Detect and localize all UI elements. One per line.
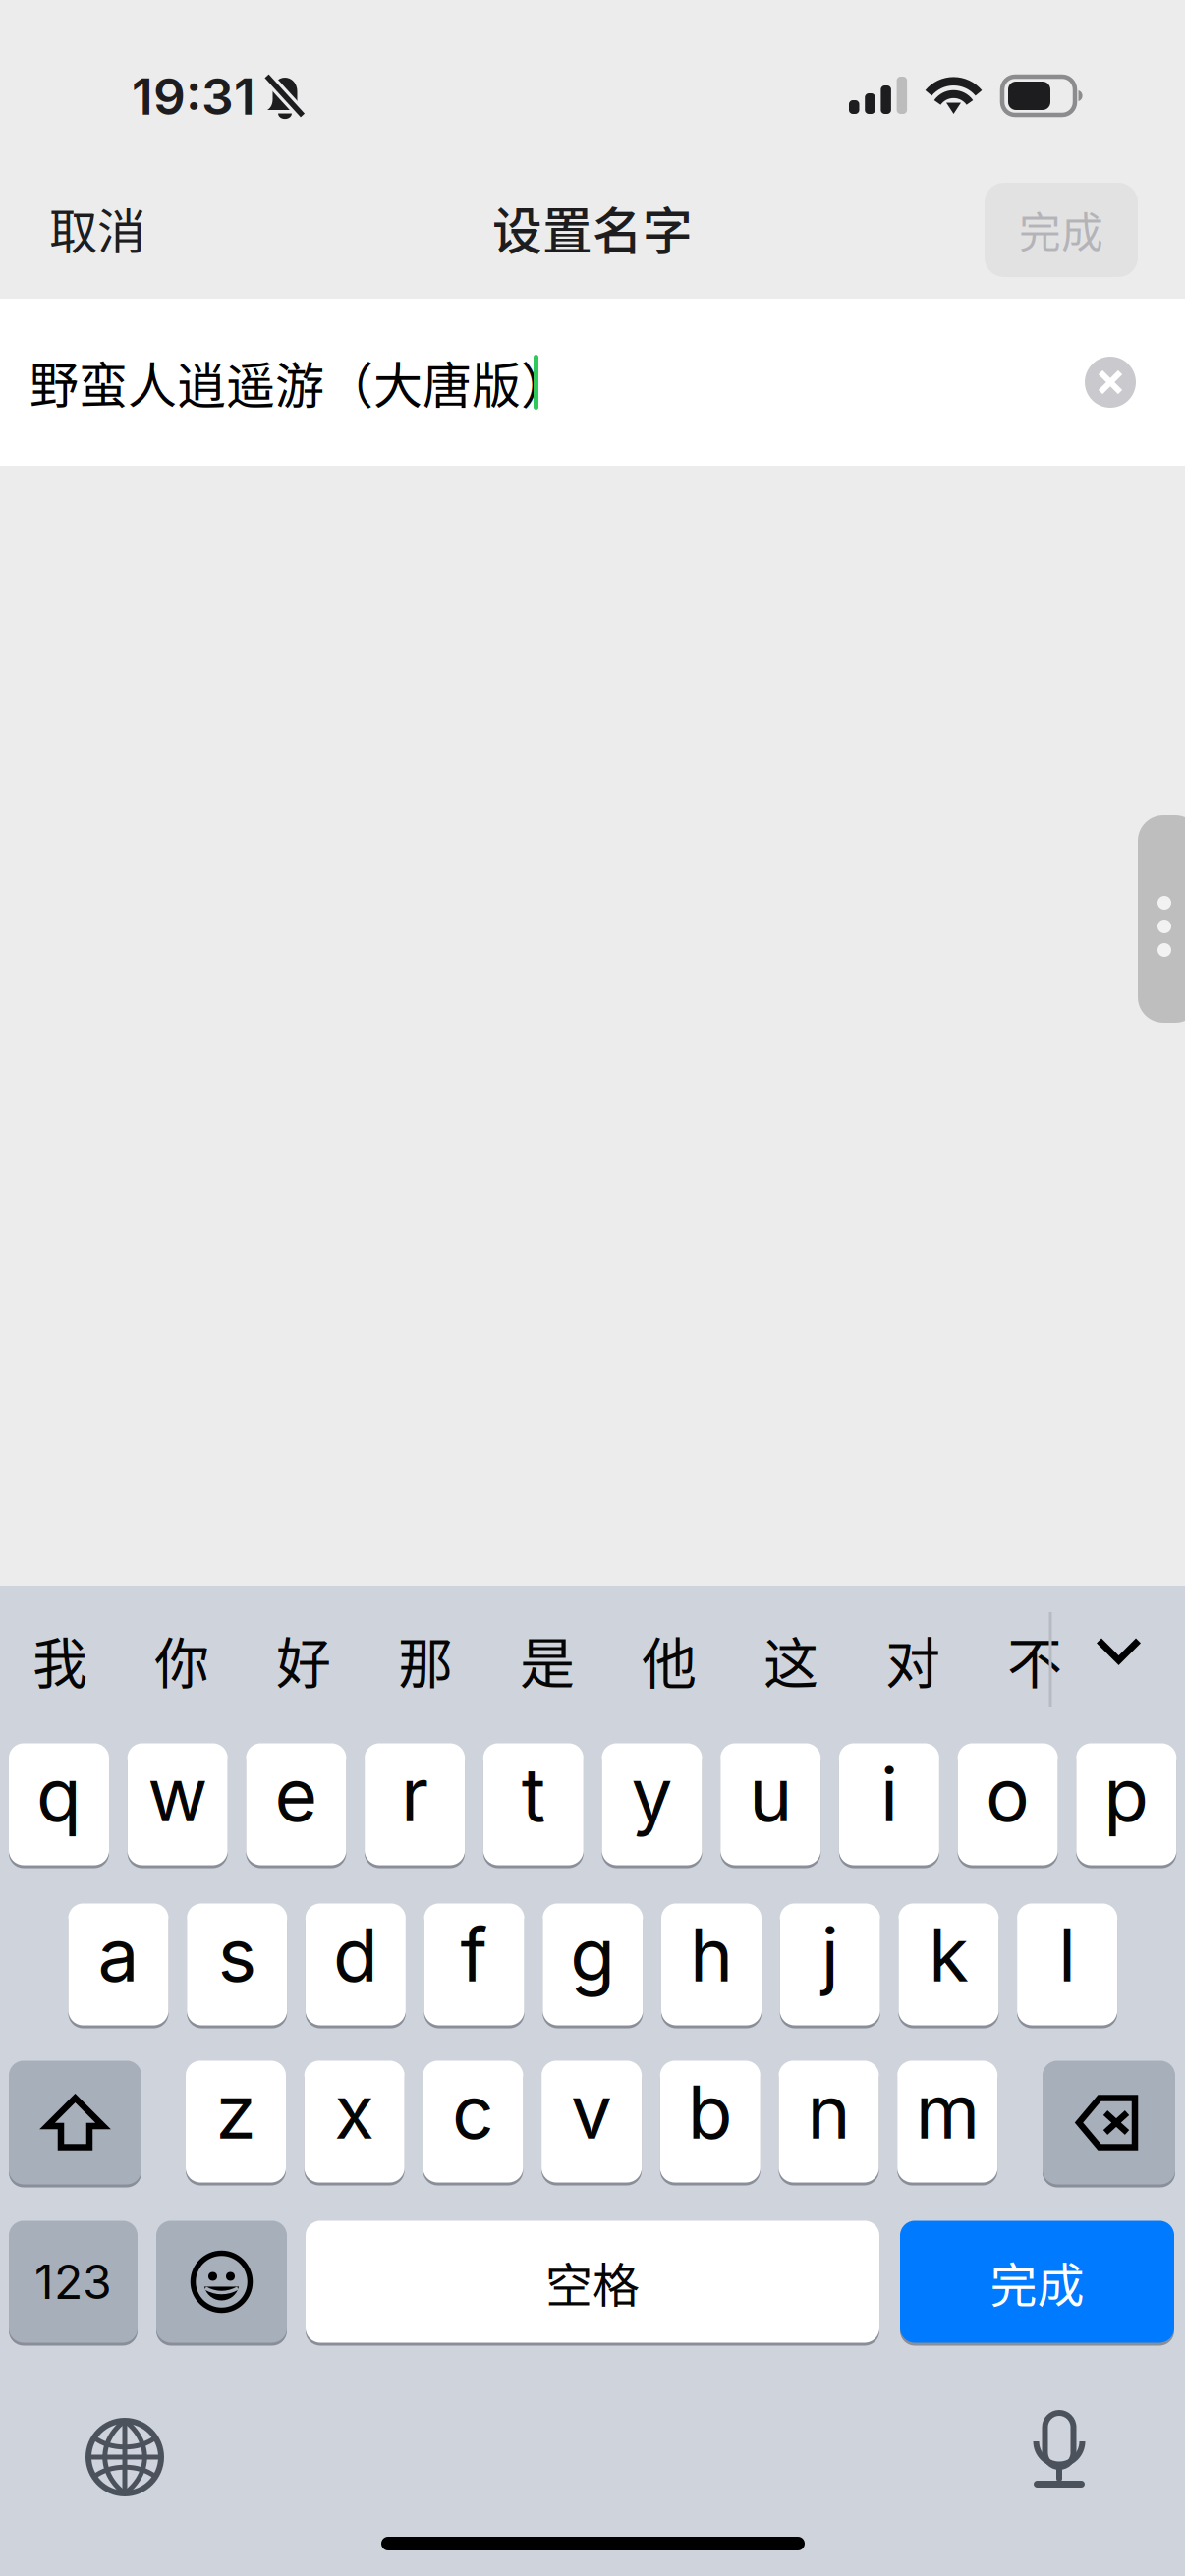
button[interactable]: 表情符号 — [156, 2219, 287, 2344]
staticText: 完成 — [1019, 200, 1103, 260]
staticText: 19:31 — [132, 66, 255, 127]
staticText: c — [452, 2067, 494, 2156]
staticText: x — [334, 2067, 375, 2156]
staticText: 野蛮人逍遥游（大唐版） — [29, 347, 570, 418]
button[interactable]: 删除 — [1043, 2059, 1175, 2186]
button[interactable]: z — [186, 2059, 286, 2184]
button[interactable]: b — [660, 2059, 760, 2184]
button[interactable]: 是 — [496, 1612, 598, 1707]
staticText: q — [36, 1750, 82, 1839]
staticText: 好 — [276, 1620, 331, 1699]
staticText: g — [570, 1910, 615, 1999]
button[interactable]: m — [897, 2059, 998, 2184]
button[interactable]: d — [305, 1902, 406, 2027]
staticText: 取消 — [49, 193, 145, 263]
staticText: 完成 — [990, 2248, 1084, 2316]
button[interactable]: e — [246, 1742, 346, 1867]
button[interactable]: 123 — [9, 2219, 138, 2344]
button[interactable]: y — [602, 1742, 702, 1867]
button[interactable]: 对 — [862, 1612, 964, 1707]
staticText: m — [915, 2067, 979, 2156]
button[interactable]: 你 — [131, 1612, 233, 1707]
button[interactable]: s — [187, 1902, 287, 2027]
staticText: o — [986, 1750, 1030, 1839]
button[interactable]: v — [542, 2059, 642, 2184]
button[interactable]: x — [304, 2059, 405, 2184]
button[interactable]: 这 — [740, 1612, 842, 1707]
staticText: e — [275, 1750, 318, 1839]
button[interactable]: 好 — [253, 1612, 355, 1707]
button[interactable]: q — [9, 1742, 109, 1867]
button[interactable]: u — [720, 1742, 821, 1867]
staticText: h — [690, 1910, 733, 1999]
button[interactable]: 清除文本 — [1085, 357, 1136, 408]
button[interactable]: c — [423, 2059, 523, 2184]
staticText: n — [807, 2067, 850, 2156]
staticText: t — [522, 1750, 545, 1839]
staticText: 不 — [1007, 1620, 1062, 1699]
button[interactable]: k — [898, 1902, 999, 2027]
button[interactable]: 切换键盘 — [85, 2418, 164, 2496]
staticText: p — [1104, 1750, 1149, 1839]
button[interactable]: r — [365, 1742, 465, 1867]
button[interactable]: t — [483, 1742, 583, 1867]
button[interactable]: w — [127, 1742, 228, 1867]
staticText: y — [631, 1750, 673, 1839]
button[interactable]: n — [779, 2059, 879, 2184]
button[interactable]: 侧边栏手柄 — [1138, 815, 1185, 1023]
staticText: 是 — [520, 1620, 575, 1699]
staticText: 设置名字 — [492, 192, 693, 264]
staticText: s — [218, 1910, 256, 1999]
staticText: d — [333, 1910, 378, 1999]
staticText: 我 — [32, 1620, 87, 1699]
button[interactable]: 空格 — [306, 2219, 879, 2344]
staticText: 对 — [885, 1620, 940, 1699]
button[interactable]: 大写 — [9, 2059, 141, 2186]
staticText: 那 — [398, 1620, 453, 1699]
button[interactable]: 收起候选词 — [1096, 1627, 1142, 1674]
button[interactable]: 取消 — [49, 193, 265, 263]
button[interactable]: 语音输入 — [1032, 2412, 1087, 2496]
staticText: j — [821, 1910, 839, 1999]
staticText: 空格 — [545, 2248, 640, 2316]
button[interactable]: 完成 — [985, 183, 1138, 277]
button[interactable]: 他 — [618, 1612, 720, 1707]
staticText: 你 — [154, 1620, 209, 1699]
staticText: 他 — [642, 1620, 697, 1699]
staticText: l — [1058, 1910, 1076, 1999]
staticText: v — [571, 2067, 612, 2156]
staticText: i — [880, 1750, 898, 1839]
staticText: a — [98, 1910, 139, 1999]
staticText: r — [401, 1750, 429, 1839]
staticText: w — [148, 1750, 208, 1839]
staticText: z — [216, 2067, 256, 2156]
button[interactable]: f — [424, 1902, 524, 2027]
staticText: 这 — [763, 1620, 818, 1699]
staticText: f — [460, 1910, 488, 1999]
staticText: u — [749, 1750, 792, 1839]
button[interactable]: a — [68, 1902, 169, 2027]
button[interactable]: g — [543, 1902, 643, 2027]
staticText: b — [688, 2067, 733, 2156]
button[interactable]: 我 — [9, 1612, 111, 1707]
button[interactable]: o — [958, 1742, 1058, 1867]
button[interactable]: p — [1076, 1742, 1176, 1867]
staticText: k — [928, 1910, 969, 1999]
button[interactable]: l — [1017, 1902, 1117, 2027]
button[interactable]: 那 — [374, 1612, 477, 1707]
button[interactable]: 不 — [984, 1612, 1086, 1707]
staticText: 123 — [34, 2253, 112, 2310]
button[interactable]: i — [839, 1742, 939, 1867]
button[interactable]: h — [661, 1902, 762, 2027]
button[interactable]: j — [780, 1902, 880, 2027]
button[interactable]: 完成 — [900, 2219, 1174, 2344]
